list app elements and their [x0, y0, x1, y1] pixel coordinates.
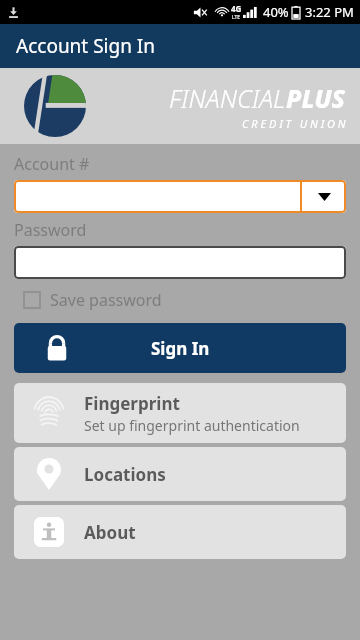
button[interactable]: Sign In	[14, 323, 346, 373]
staticText: About	[84, 521, 136, 544]
staticText: PLUS	[286, 81, 346, 115]
button[interactable]: Select account	[302, 180, 346, 213]
staticText: FINANCIAL	[169, 81, 286, 115]
staticText: Account Sign In	[16, 33, 156, 59]
staticText: Locations	[84, 463, 166, 486]
button[interactable]	[14, 246, 346, 279]
button[interactable]: Fingerprint	[14, 383, 346, 443]
staticText: Save password	[50, 289, 162, 311]
staticText: Password	[14, 219, 87, 241]
staticText: Set up fingerprint authentication	[84, 416, 300, 435]
button[interactable]: Save password	[14, 287, 162, 313]
staticText: 3:22 PM	[305, 3, 354, 21]
staticText: Fingerprint	[84, 392, 180, 415]
button[interactable]: Locations	[14, 447, 346, 501]
staticText: 40%	[263, 3, 289, 21]
staticText: Account #	[14, 153, 90, 175]
staticText: 4G	[231, 3, 242, 14]
staticText: Sign In	[151, 337, 210, 360]
button[interactable]: Select account	[14, 180, 346, 213]
button[interactable]: About	[14, 505, 346, 559]
staticText: C R E D I T U N I O N	[242, 116, 346, 131]
staticText: LTE	[232, 14, 241, 21]
